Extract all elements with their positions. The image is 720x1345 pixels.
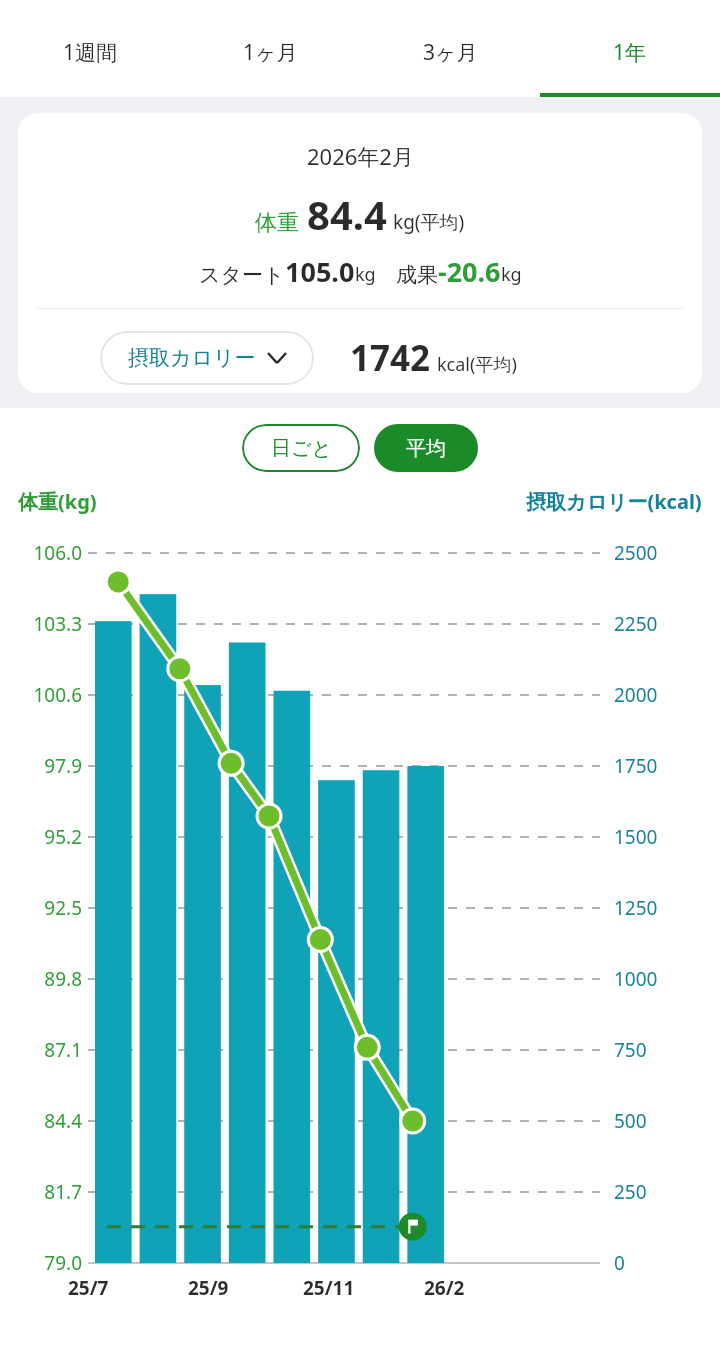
button[interactable]: 1週間 xyxy=(0,0,180,97)
staticText: 1500 xyxy=(614,824,658,850)
staticText: 摂取カロリー xyxy=(128,345,256,371)
staticText: 体重 xyxy=(255,209,299,237)
staticText: 1ヶ月 xyxy=(243,38,298,67)
staticText: 79.0 xyxy=(44,1250,82,1276)
staticText: 95.2 xyxy=(44,824,82,850)
button[interactable]: 1年 xyxy=(540,0,720,97)
staticText: 89.8 xyxy=(44,966,82,992)
button[interactable]: 1ヶ月 xyxy=(180,0,360,97)
staticText: 100.6 xyxy=(33,682,82,708)
staticText: kg xyxy=(355,262,376,287)
button[interactable]: 3ヶ月 xyxy=(360,0,540,97)
staticText: 1週間 xyxy=(63,38,118,67)
staticText: 81.7 xyxy=(44,1179,82,1205)
staticText: 250 xyxy=(614,1179,647,1205)
staticText: -20.6 xyxy=(438,253,501,290)
staticText: 105.0 xyxy=(285,253,355,290)
button[interactable]: 平均 xyxy=(374,424,478,472)
staticText: 3ヶ月 xyxy=(423,38,478,67)
staticText: 平均 xyxy=(406,436,446,461)
staticText: 体重(kg) xyxy=(18,488,97,515)
staticText: 87.1 xyxy=(44,1037,82,1063)
staticText: 日ごと xyxy=(271,436,332,461)
staticText: 26/2 xyxy=(424,1275,465,1301)
staticText: kg xyxy=(501,262,522,287)
staticText: スタート xyxy=(199,262,285,288)
staticText: 1年 xyxy=(613,38,647,67)
staticText: 103.3 xyxy=(33,611,82,637)
staticText: 成果 xyxy=(396,262,438,288)
staticText: 1742 xyxy=(350,334,431,382)
staticText: 25/11 xyxy=(303,1275,355,1301)
staticText: 1000 xyxy=(614,966,658,992)
staticText: 106.0 xyxy=(33,540,82,566)
staticText: 97.9 xyxy=(44,753,82,779)
staticText: 84.4 xyxy=(307,187,387,241)
staticText: 750 xyxy=(614,1037,647,1063)
staticText: 2250 xyxy=(614,611,658,637)
staticText: kg(平均) xyxy=(393,209,465,235)
staticText: 84.4 xyxy=(44,1108,82,1134)
button[interactable]: 摂取カロリー xyxy=(100,331,314,385)
staticText: 1750 xyxy=(614,753,658,779)
staticText: 92.5 xyxy=(44,895,82,921)
staticText: 2026年2月 xyxy=(307,141,414,171)
staticText: 摂取カロリー(kcal) xyxy=(526,488,702,515)
staticText: 25/7 xyxy=(68,1275,109,1301)
button[interactable]: 日ごと xyxy=(242,424,360,472)
staticText: 25/9 xyxy=(188,1275,229,1301)
staticText: 500 xyxy=(614,1108,647,1134)
staticText: 1250 xyxy=(614,895,658,921)
staticText: 2000 xyxy=(614,682,658,708)
staticText: kcal(平均) xyxy=(437,352,517,377)
staticText: 2500 xyxy=(614,540,658,566)
staticText: 0 xyxy=(614,1250,625,1276)
